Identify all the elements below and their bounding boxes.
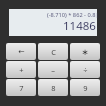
- button[interactable]: Divide: [70, 61, 100, 78]
- staticText: 7: [19, 83, 24, 93]
- button[interactable]: 7: [6, 79, 36, 96]
- button[interactable]: 8: [38, 79, 68, 96]
- button[interactable]: Minus: [38, 61, 68, 78]
- button[interactable]: Plus: [6, 61, 36, 78]
- staticText: –: [51, 65, 55, 75]
- staticText: (-8.710) * 862 - 0.8|: [47, 11, 99, 19]
- staticText: 11486: [63, 18, 96, 34]
- button[interactable]: 9: [70, 79, 100, 96]
- staticText: C: [51, 47, 56, 57]
- button[interactable]: Multiply: [70, 43, 100, 60]
- button[interactable]: Backspace: [6, 43, 36, 60]
- staticText: 9: [83, 83, 88, 93]
- staticText: 8: [51, 83, 56, 93]
- staticText: ÷: [83, 65, 88, 75]
- staticText: ∗: [81, 47, 89, 57]
- staticText: +: [19, 65, 24, 75]
- staticText: ←: [18, 47, 25, 56]
- button[interactable]: C: [38, 43, 68, 60]
